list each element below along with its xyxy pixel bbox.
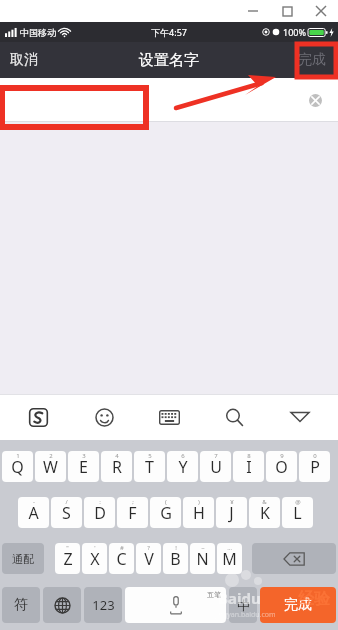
button[interactable]: V xyxy=(136,543,161,574)
staticText: Baidu xyxy=(218,588,261,608)
button[interactable]: Maximize xyxy=(270,0,304,22)
button[interactable]: 完成 xyxy=(260,587,336,623)
staticText: 经验 xyxy=(298,589,330,609)
button[interactable]: X xyxy=(82,543,107,574)
button[interactable]: Sogou input xyxy=(11,395,65,439)
staticText: G xyxy=(160,502,172,524)
staticText: ( xyxy=(165,498,167,506)
staticText: 0 xyxy=(313,452,317,460)
button[interactable]: G xyxy=(150,497,181,528)
button[interactable]: Emoji xyxy=(77,395,131,439)
button[interactable]: 符 xyxy=(2,587,40,623)
button[interactable]: L xyxy=(282,497,313,528)
staticText: 五笔 xyxy=(207,590,221,599)
button[interactable]: W xyxy=(35,451,66,482)
button[interactable]: K xyxy=(249,497,280,528)
button[interactable]: S xyxy=(51,497,82,528)
staticText: 9 xyxy=(280,452,284,460)
staticText: # xyxy=(120,544,124,552)
staticText: 符 xyxy=(14,596,28,614)
staticText: 3 xyxy=(82,452,86,460)
button[interactable]: P xyxy=(299,451,330,482)
button[interactable]: Z xyxy=(55,543,80,574)
staticText: 中国移动 xyxy=(20,27,56,38)
staticText: 6 xyxy=(181,452,185,460)
staticText: ) xyxy=(198,498,200,506)
staticText: H xyxy=(193,502,205,524)
button[interactable]: D xyxy=(84,497,115,528)
staticText: M xyxy=(222,548,237,570)
staticText: Z xyxy=(63,548,73,570)
button[interactable]: Close xyxy=(304,0,338,22)
staticText: 完成 xyxy=(284,596,312,614)
button[interactable]: M xyxy=(217,543,242,574)
staticText: 中 xyxy=(237,597,250,613)
staticText: S xyxy=(62,502,71,524)
staticText: R xyxy=(112,456,122,478)
button[interactable]: 中 xyxy=(229,587,257,623)
staticText: P xyxy=(310,456,320,478)
staticText: " xyxy=(66,544,69,552)
staticText: W xyxy=(43,456,58,478)
staticText: I xyxy=(246,456,252,478)
button[interactable]: 取消 xyxy=(10,42,38,78)
button[interactable]: 完成 xyxy=(298,42,326,78)
staticText: Q xyxy=(11,456,24,478)
button[interactable]: A xyxy=(18,497,49,528)
staticText: 1 xyxy=(16,452,20,460)
staticText: ~ xyxy=(201,544,205,552)
staticText: F xyxy=(128,502,137,524)
staticText: X xyxy=(90,548,100,570)
staticText: 100% xyxy=(283,26,306,38)
staticText: D xyxy=(94,502,106,524)
staticText: 通配 xyxy=(12,552,34,566)
button[interactable]: C xyxy=(109,543,134,574)
staticText: - xyxy=(33,498,35,506)
button[interactable]: O xyxy=(266,451,297,482)
button[interactable]: Search xyxy=(207,395,261,439)
staticText: : xyxy=(99,498,101,506)
button[interactable]: T xyxy=(134,451,165,482)
button[interactable]: 通配 xyxy=(2,543,44,574)
staticText: L xyxy=(293,502,302,524)
staticText: B xyxy=(170,548,181,570)
staticText: 2 xyxy=(49,452,53,460)
staticText: V xyxy=(144,548,154,570)
staticText: ? xyxy=(147,544,150,552)
button[interactable]: U xyxy=(200,451,231,482)
button[interactable]: Clear text xyxy=(304,89,326,111)
staticText: E xyxy=(79,456,88,478)
staticText: 123 xyxy=(92,596,115,614)
staticText: / xyxy=(65,498,68,506)
button[interactable]: Space xyxy=(125,587,226,623)
button[interactable]: R xyxy=(101,451,132,482)
button[interactable]: N xyxy=(190,543,215,574)
button[interactable]: E xyxy=(68,451,99,482)
staticText: Y xyxy=(178,456,188,478)
staticText: K xyxy=(260,502,270,524)
staticText: J xyxy=(229,502,234,524)
staticText: & xyxy=(262,498,267,506)
staticText: jingyan.baidu.com xyxy=(215,610,276,620)
staticText: A xyxy=(28,502,39,524)
staticText: 8 xyxy=(247,452,251,460)
staticText: 7 xyxy=(214,452,218,460)
button[interactable]: J xyxy=(216,497,247,528)
button[interactable]: I xyxy=(233,451,264,482)
button[interactable]: B xyxy=(163,543,188,574)
button[interactable]: Backspace xyxy=(252,543,336,574)
button[interactable] xyxy=(8,86,288,114)
button[interactable]: Q xyxy=(2,451,33,482)
staticText: ! xyxy=(175,544,177,552)
staticText: N xyxy=(196,548,209,570)
staticText: 取消 xyxy=(10,51,38,69)
button[interactable]: 123 xyxy=(84,587,122,623)
button[interactable]: Keyboard layout xyxy=(142,395,196,439)
button[interactable]: F xyxy=(117,497,148,528)
button[interactable]: Switch language xyxy=(43,587,81,623)
button[interactable]: H xyxy=(183,497,214,528)
button[interactable]: Minimize xyxy=(236,0,270,22)
button[interactable]: Hide keyboard xyxy=(273,395,327,439)
staticText: ¥ xyxy=(230,498,234,506)
button[interactable]: Y xyxy=(167,451,198,482)
